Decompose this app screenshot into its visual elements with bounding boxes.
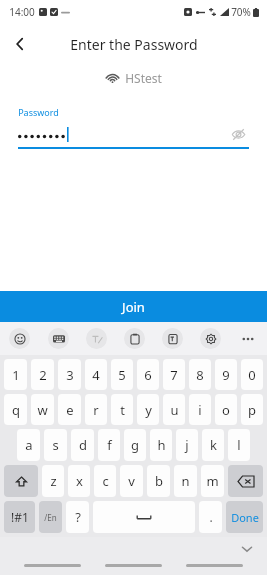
staticText: c bbox=[102, 472, 109, 490]
button[interactable]: n bbox=[174, 465, 197, 497]
button[interactable]: Handwriting bbox=[77, 322, 115, 355]
button[interactable]: u bbox=[163, 394, 185, 425]
button[interactable]: v bbox=[120, 465, 143, 497]
staticText: a bbox=[25, 436, 33, 454]
staticText: HStest bbox=[125, 70, 162, 86]
button[interactable]: a bbox=[17, 429, 40, 461]
button[interactable]: Space bbox=[93, 501, 195, 533]
staticText: e bbox=[66, 401, 74, 419]
button[interactable]: p bbox=[241, 394, 263, 425]
button[interactable]: l bbox=[228, 429, 250, 461]
button[interactable]: . bbox=[199, 501, 222, 533]
staticText: f bbox=[107, 436, 112, 454]
button[interactable]: 2 bbox=[31, 359, 54, 390]
staticText: r bbox=[93, 401, 99, 419]
button[interactable]: x bbox=[68, 465, 90, 497]
button[interactable]: e bbox=[58, 394, 81, 425]
staticText: h bbox=[157, 436, 166, 454]
button[interactable]: Text bbox=[153, 322, 191, 355]
button[interactable]: m bbox=[201, 465, 224, 497]
button[interactable]: Show password bbox=[227, 124, 249, 144]
staticText: m bbox=[206, 472, 219, 490]
button[interactable]: ? bbox=[66, 501, 89, 533]
staticText: 0 bbox=[248, 366, 256, 384]
button[interactable]: 4 bbox=[85, 359, 107, 390]
staticText: 7 bbox=[170, 366, 178, 384]
staticText: 6 bbox=[144, 366, 152, 384]
button[interactable]: 7 bbox=[163, 359, 185, 390]
button[interactable]: j bbox=[176, 429, 198, 461]
staticText: 8 bbox=[196, 366, 204, 384]
staticText: p bbox=[248, 401, 256, 419]
button[interactable]: o bbox=[215, 394, 237, 425]
button[interactable]: !#1 bbox=[4, 501, 35, 533]
button[interactable]: Back bbox=[186, 564, 243, 567]
staticText: 9 bbox=[222, 366, 230, 384]
staticText: . bbox=[209, 509, 213, 525]
staticText: 70% bbox=[231, 5, 251, 19]
staticText: ? bbox=[75, 508, 81, 526]
staticText: n bbox=[181, 472, 190, 490]
staticText: 2 bbox=[39, 366, 47, 384]
staticText: k bbox=[210, 436, 217, 454]
button[interactable]: Done bbox=[226, 501, 263, 533]
staticText: z bbox=[50, 472, 57, 490]
button[interactable]: Keyboard bbox=[39, 322, 77, 355]
staticText: t bbox=[120, 401, 125, 419]
staticText: 4 bbox=[92, 366, 100, 384]
button[interactable]: Recents bbox=[24, 564, 81, 567]
button[interactable]: z bbox=[42, 465, 64, 497]
staticText: Join bbox=[122, 298, 145, 316]
button[interactable]: q bbox=[4, 394, 27, 425]
staticText: j bbox=[185, 436, 189, 454]
button[interactable]: 9 bbox=[215, 359, 237, 390]
staticText: s bbox=[52, 436, 59, 454]
button[interactable]: d bbox=[71, 429, 94, 461]
staticText: 14:00 bbox=[9, 5, 35, 19]
button[interactable]: t bbox=[111, 394, 133, 425]
staticText: w bbox=[37, 401, 48, 419]
staticText: 1 bbox=[12, 366, 20, 384]
staticText: u bbox=[170, 401, 179, 419]
button[interactable]: c bbox=[94, 465, 116, 497]
staticText: y bbox=[145, 401, 152, 419]
button[interactable]: y bbox=[137, 394, 159, 425]
staticText: Done bbox=[231, 510, 259, 525]
button[interactable]: Back bbox=[0, 24, 40, 64]
button[interactable]: Shift bbox=[4, 465, 38, 497]
button[interactable]: Home bbox=[105, 564, 162, 567]
button[interactable]: Backspace bbox=[228, 465, 263, 497]
button[interactable]: Settings bbox=[191, 322, 229, 355]
staticText: b bbox=[155, 472, 163, 490]
button[interactable]: i bbox=[189, 394, 211, 425]
button[interactable]: b bbox=[147, 465, 170, 497]
button[interactable]: k bbox=[202, 429, 224, 461]
button[interactable]: f bbox=[98, 429, 120, 461]
staticText: i bbox=[198, 401, 202, 419]
staticText: o bbox=[222, 401, 230, 419]
button[interactable]: Clipboard bbox=[115, 322, 153, 355]
button[interactable]: /En bbox=[39, 501, 62, 533]
button[interactable]: 1 bbox=[4, 359, 27, 390]
button[interactable]: 6 bbox=[137, 359, 159, 390]
button[interactable]: g bbox=[124, 429, 146, 461]
staticText: x bbox=[76, 472, 83, 490]
button[interactable]: 0 bbox=[241, 359, 263, 390]
button[interactable]: r bbox=[85, 394, 107, 425]
staticText: !#1 bbox=[11, 509, 29, 525]
button[interactable]: 5 bbox=[111, 359, 133, 390]
button[interactable]: w bbox=[31, 394, 54, 425]
staticText: 3 bbox=[66, 366, 74, 384]
staticText: Enter the Password bbox=[70, 35, 198, 54]
button[interactable]: Hide keyboard bbox=[237, 539, 257, 559]
staticText: 5 bbox=[118, 366, 126, 384]
button[interactable]: Join bbox=[0, 291, 267, 322]
button[interactable]: 8 bbox=[189, 359, 211, 390]
button[interactable]: h bbox=[150, 429, 172, 461]
button[interactable]: More bbox=[229, 322, 267, 355]
button[interactable]: Emoji bbox=[0, 322, 39, 355]
staticText: d bbox=[79, 436, 87, 454]
staticText: l bbox=[237, 436, 241, 454]
button[interactable]: s bbox=[44, 429, 67, 461]
button[interactable]: 3 bbox=[58, 359, 81, 390]
